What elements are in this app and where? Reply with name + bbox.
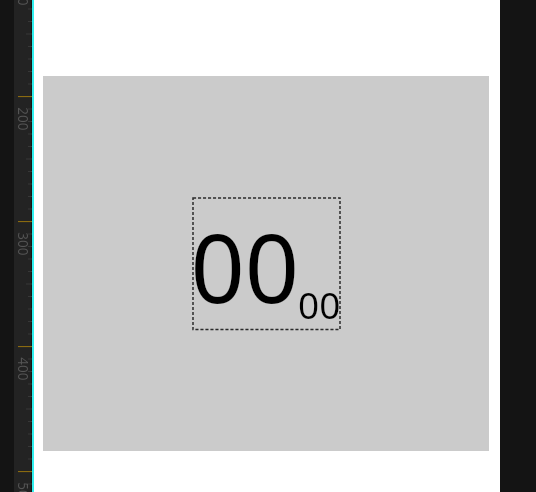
button[interactable]: Placeholder surface <box>43 76 489 451</box>
button[interactable]: Design canvas <box>34 0 500 492</box>
button[interactable]: Vertical ruler <box>14 0 34 492</box>
button[interactable]: Selected text node 0000 <box>191 196 342 332</box>
